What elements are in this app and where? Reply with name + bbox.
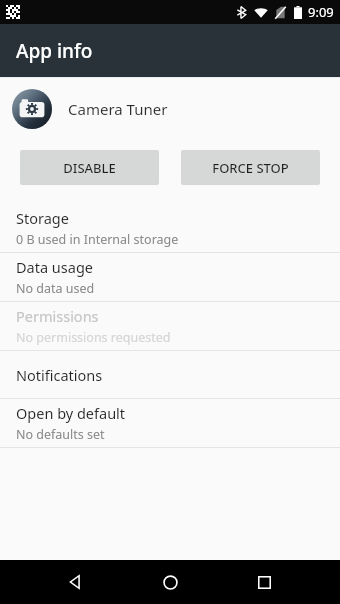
staticText: FORCE STOP xyxy=(212,159,289,177)
staticText: Data usage xyxy=(16,257,93,277)
staticText: No data used xyxy=(16,280,95,297)
button[interactable]: Open by default xyxy=(0,399,340,447)
staticText: Permissions xyxy=(16,306,99,326)
button[interactable]: DISABLE xyxy=(20,150,159,185)
staticText: Open by default xyxy=(16,403,126,423)
staticText: 9:09 xyxy=(308,3,334,21)
staticText: Camera Tuner xyxy=(68,99,168,119)
staticText: Storage xyxy=(16,208,69,228)
button[interactable]: Recent apps xyxy=(246,564,282,600)
staticText: 0 B used in Internal storage xyxy=(16,231,179,248)
button[interactable]: Back xyxy=(58,564,94,600)
button[interactable]: Notifications xyxy=(0,351,340,398)
staticText: No defaults set xyxy=(16,426,105,443)
button[interactable]: FORCE STOP xyxy=(181,150,320,185)
button[interactable]: Storage xyxy=(0,204,340,252)
button[interactable]: Permissions xyxy=(0,302,340,350)
staticText: Notifications xyxy=(16,365,103,385)
staticText: No permissions requested xyxy=(16,329,171,346)
button[interactable]: Data usage xyxy=(0,253,340,301)
button[interactable]: Home xyxy=(152,564,188,600)
staticText: DISABLE xyxy=(63,159,116,177)
staticText: App info xyxy=(16,38,93,64)
